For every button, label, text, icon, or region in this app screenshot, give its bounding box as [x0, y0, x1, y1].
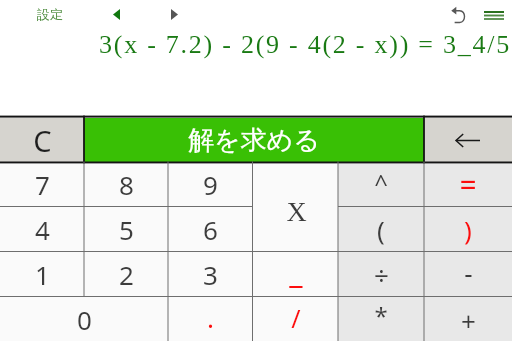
button[interactable]: 5	[84, 207, 168, 252]
button[interactable]: .	[168, 297, 253, 341]
button[interactable]: Backspace	[424, 118, 512, 162]
staticText: 2	[119, 257, 134, 292]
staticText: _	[289, 251, 303, 292]
staticText: X	[286, 196, 307, 227]
button[interactable]: 0	[0, 297, 168, 341]
button[interactable]: 1	[0, 252, 84, 297]
staticText: /	[291, 301, 301, 335]
staticText: +	[461, 303, 476, 338]
staticText: 9	[203, 167, 218, 202]
button[interactable]: 3	[168, 252, 253, 297]
staticText: 3	[203, 257, 218, 292]
button[interactable]: Undo	[444, 3, 472, 29]
button[interactable]: 2	[84, 252, 168, 297]
button[interactable]: 9	[168, 162, 253, 207]
staticText: 1	[35, 257, 50, 292]
staticText: 解を求める	[188, 124, 320, 157]
staticText: =	[459, 164, 477, 205]
staticText: C	[33, 121, 52, 160]
staticText: 8	[119, 167, 134, 202]
staticText: 7	[35, 167, 50, 202]
button[interactable]: ^	[338, 162, 424, 207]
button[interactable]: +	[424, 297, 512, 341]
button[interactable]: _	[253, 252, 339, 297]
button[interactable]: Next	[161, 3, 187, 25]
staticText: 3(x - 7.2) - 2(9 - 4(2 - x)) = 3_4/5	[99, 30, 511, 59]
staticText: ÷	[374, 257, 389, 292]
button[interactable]: /	[253, 297, 339, 341]
staticText: 0	[77, 302, 92, 337]
button[interactable]: =	[424, 162, 512, 207]
staticText: 5	[119, 212, 134, 247]
button[interactable]: C	[0, 118, 84, 162]
button[interactable]: 7	[0, 162, 84, 207]
staticText: (	[377, 212, 385, 247]
button[interactable]: (	[338, 207, 424, 252]
button[interactable]: *	[338, 297, 424, 341]
button[interactable]: )	[424, 207, 512, 252]
button[interactable]: Menu	[479, 2, 509, 28]
button[interactable]: -	[424, 252, 512, 297]
staticText: ^	[374, 166, 388, 199]
staticText: .	[207, 300, 214, 335]
staticText: 6	[203, 212, 218, 247]
staticText: )	[464, 212, 472, 247]
button[interactable]: Previous	[103, 3, 129, 25]
staticText: *	[374, 299, 388, 332]
button[interactable]: 4	[0, 207, 84, 252]
button[interactable]: 8	[84, 162, 168, 207]
staticText: 設定	[37, 6, 63, 22]
button[interactable]: X	[253, 162, 339, 252]
button[interactable]: 6	[168, 207, 253, 252]
button[interactable]: ÷	[338, 252, 424, 297]
button[interactable]: 設定	[26, 2, 74, 26]
button[interactable]: 解を求める	[84, 118, 424, 162]
staticText: -	[464, 255, 473, 290]
staticText: 4	[35, 212, 50, 247]
